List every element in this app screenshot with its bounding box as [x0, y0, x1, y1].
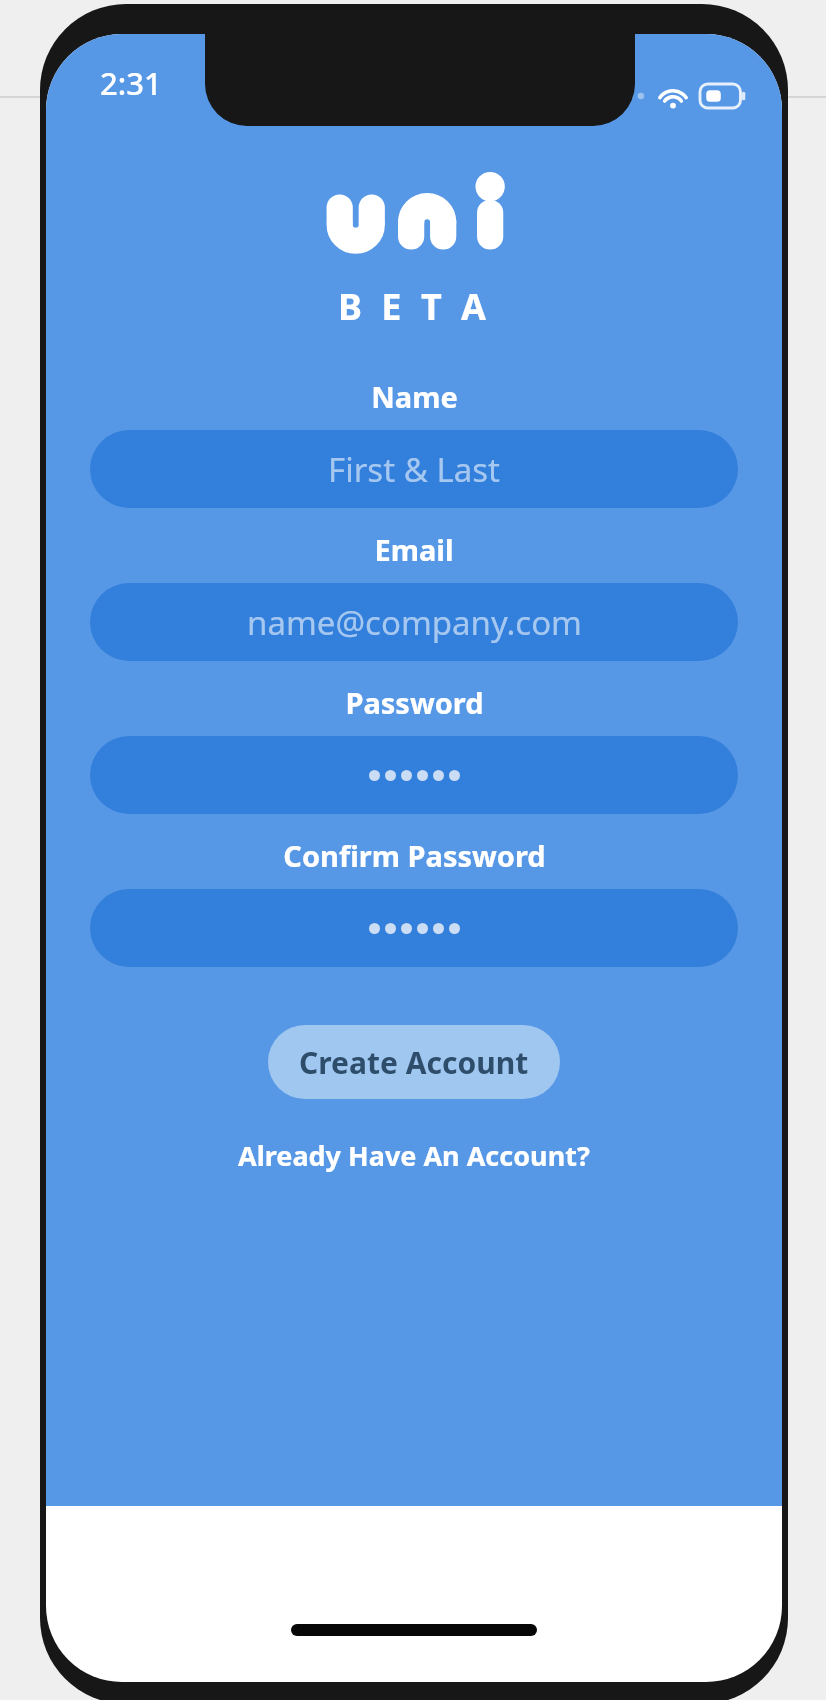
staticText: Password: [345, 683, 484, 722]
staticText: B E T A: [338, 282, 491, 331]
staticText: Already Have An Account?: [238, 1137, 590, 1174]
staticText: Confirm Password: [283, 836, 546, 875]
button[interactable]: Create Account: [268, 1025, 560, 1099]
button[interactable]: name@company.com: [90, 583, 738, 661]
button[interactable]: [90, 889, 738, 967]
button[interactable]: Already Have An Account?: [238, 1137, 590, 1174]
staticText: Create Account: [299, 1042, 529, 1083]
staticText: Name: [371, 377, 458, 416]
staticText: First & Last: [328, 447, 500, 492]
button[interactable]: First & Last: [90, 430, 738, 508]
staticText: Email: [374, 530, 454, 569]
staticText: name@company.com: [247, 600, 582, 645]
button[interactable]: [90, 736, 738, 814]
staticText: 2:31: [100, 62, 162, 104]
